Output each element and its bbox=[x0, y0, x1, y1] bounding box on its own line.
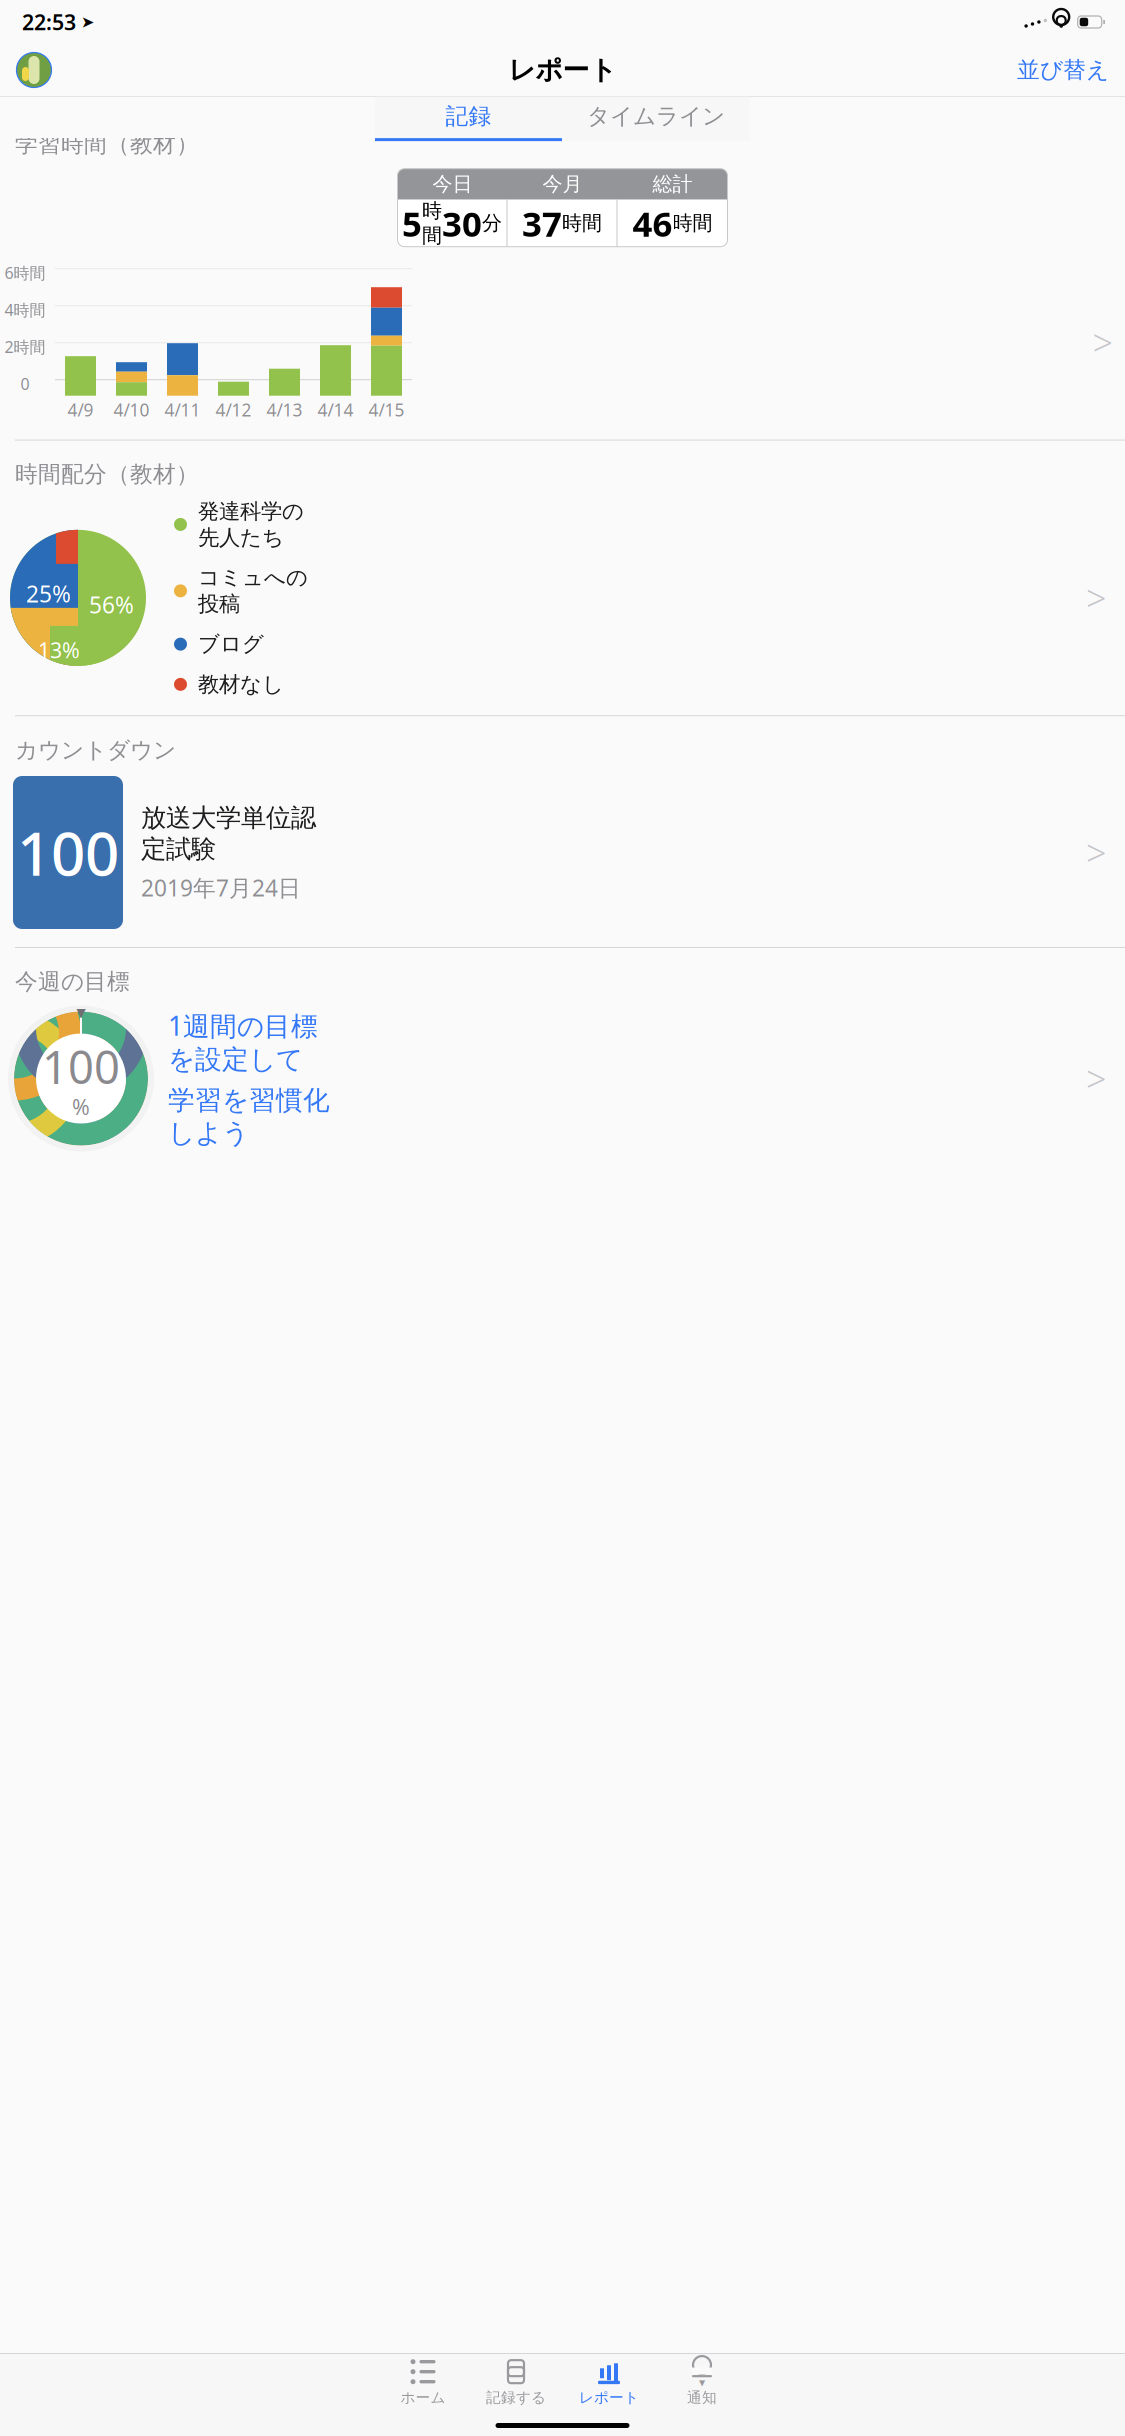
staticText: コミュへの投稿 bbox=[198, 565, 308, 617]
button[interactable]: 100 bbox=[0, 764, 1125, 943]
staticText: ➤ bbox=[81, 13, 94, 31]
staticText: 発達科学の先人たち bbox=[198, 498, 304, 551]
button[interactable]: タイムライン bbox=[562, 97, 750, 139]
staticText: 放送大学単位認定試験 bbox=[141, 802, 316, 864]
staticText: > bbox=[1086, 574, 1107, 622]
button[interactable]: レポート bbox=[562, 2359, 655, 2407]
staticText: 4/12 bbox=[215, 398, 251, 421]
staticText: ▼ bbox=[699, 2378, 705, 2387]
staticText: % bbox=[72, 1092, 90, 1121]
staticText: 6時間 bbox=[4, 262, 45, 283]
button[interactable]: 並び替え bbox=[1017, 48, 1109, 92]
button[interactable]: 100 bbox=[0, 995, 1125, 1169]
staticText: ブログ bbox=[198, 631, 264, 657]
staticText: 学習を習慣化しよう bbox=[168, 1084, 330, 1149]
staticText: レポート bbox=[508, 54, 616, 86]
staticText: 今日 bbox=[432, 172, 472, 196]
button[interactable]: ▼ bbox=[655, 2359, 748, 2407]
staticText: 1週間の目標を設定して bbox=[168, 1008, 318, 1076]
button[interactable]: ホーム bbox=[376, 2359, 469, 2407]
staticText: 37 bbox=[522, 200, 562, 246]
button[interactable]: 記録 bbox=[375, 97, 562, 139]
staticText: 時間 bbox=[422, 199, 442, 248]
staticText: ▼ bbox=[76, 1006, 85, 1019]
button[interactable]: 学習時間の詳細 bbox=[1087, 310, 1119, 374]
staticText: 時間 bbox=[672, 211, 712, 235]
staticText: ホーム bbox=[400, 2389, 445, 2407]
staticText: > bbox=[1092, 318, 1113, 366]
staticText: 22:53 bbox=[22, 8, 76, 36]
staticText: 100 bbox=[42, 1036, 120, 1096]
staticText: レポート bbox=[579, 2389, 639, 2407]
staticText: 4/14 bbox=[317, 398, 353, 421]
staticText: 2019年7月24日 bbox=[141, 873, 301, 903]
staticText: 分 bbox=[482, 211, 502, 235]
button[interactable]: 記録する bbox=[469, 2359, 562, 2407]
staticText: 総計 bbox=[652, 172, 692, 196]
staticText: 通知 bbox=[687, 2389, 717, 2407]
staticText: 時間 bbox=[562, 211, 602, 235]
staticText: > bbox=[1086, 1055, 1107, 1102]
staticText: > bbox=[1086, 829, 1107, 876]
staticText: 56% bbox=[89, 590, 134, 620]
staticText: タイムライン bbox=[587, 102, 725, 130]
staticText: 今月 bbox=[542, 172, 582, 196]
staticText: 学習時間（教材） bbox=[15, 130, 199, 158]
staticText: 25% bbox=[26, 579, 71, 609]
staticText: 4/11 bbox=[164, 398, 200, 421]
staticText: 100 bbox=[17, 813, 119, 892]
staticText: 4/10 bbox=[113, 398, 149, 421]
button[interactable]: プロフィール bbox=[12, 48, 56, 92]
staticText: 4/13 bbox=[266, 398, 302, 421]
staticText: 4/15 bbox=[368, 398, 404, 421]
staticText: 30 bbox=[442, 200, 482, 246]
staticText: 時間配分（教材） bbox=[15, 460, 199, 488]
staticText: 記録する bbox=[486, 2389, 546, 2407]
button[interactable]: 25% bbox=[0, 488, 1125, 709]
staticText: 教材なし bbox=[198, 671, 284, 697]
staticText: 5 bbox=[402, 200, 422, 246]
staticText: 4/9 bbox=[67, 398, 93, 421]
staticText: 並び替え bbox=[1017, 56, 1109, 84]
staticText: 記録 bbox=[445, 102, 491, 130]
staticText: 今週の目標 bbox=[15, 968, 130, 995]
staticText: 4時間 bbox=[4, 299, 45, 320]
staticText: 2時間 bbox=[4, 336, 45, 357]
staticText: 0 bbox=[20, 373, 29, 394]
staticText: 46 bbox=[632, 200, 672, 246]
staticText: カウントダウン bbox=[15, 736, 176, 764]
staticText: 13% bbox=[38, 636, 80, 664]
